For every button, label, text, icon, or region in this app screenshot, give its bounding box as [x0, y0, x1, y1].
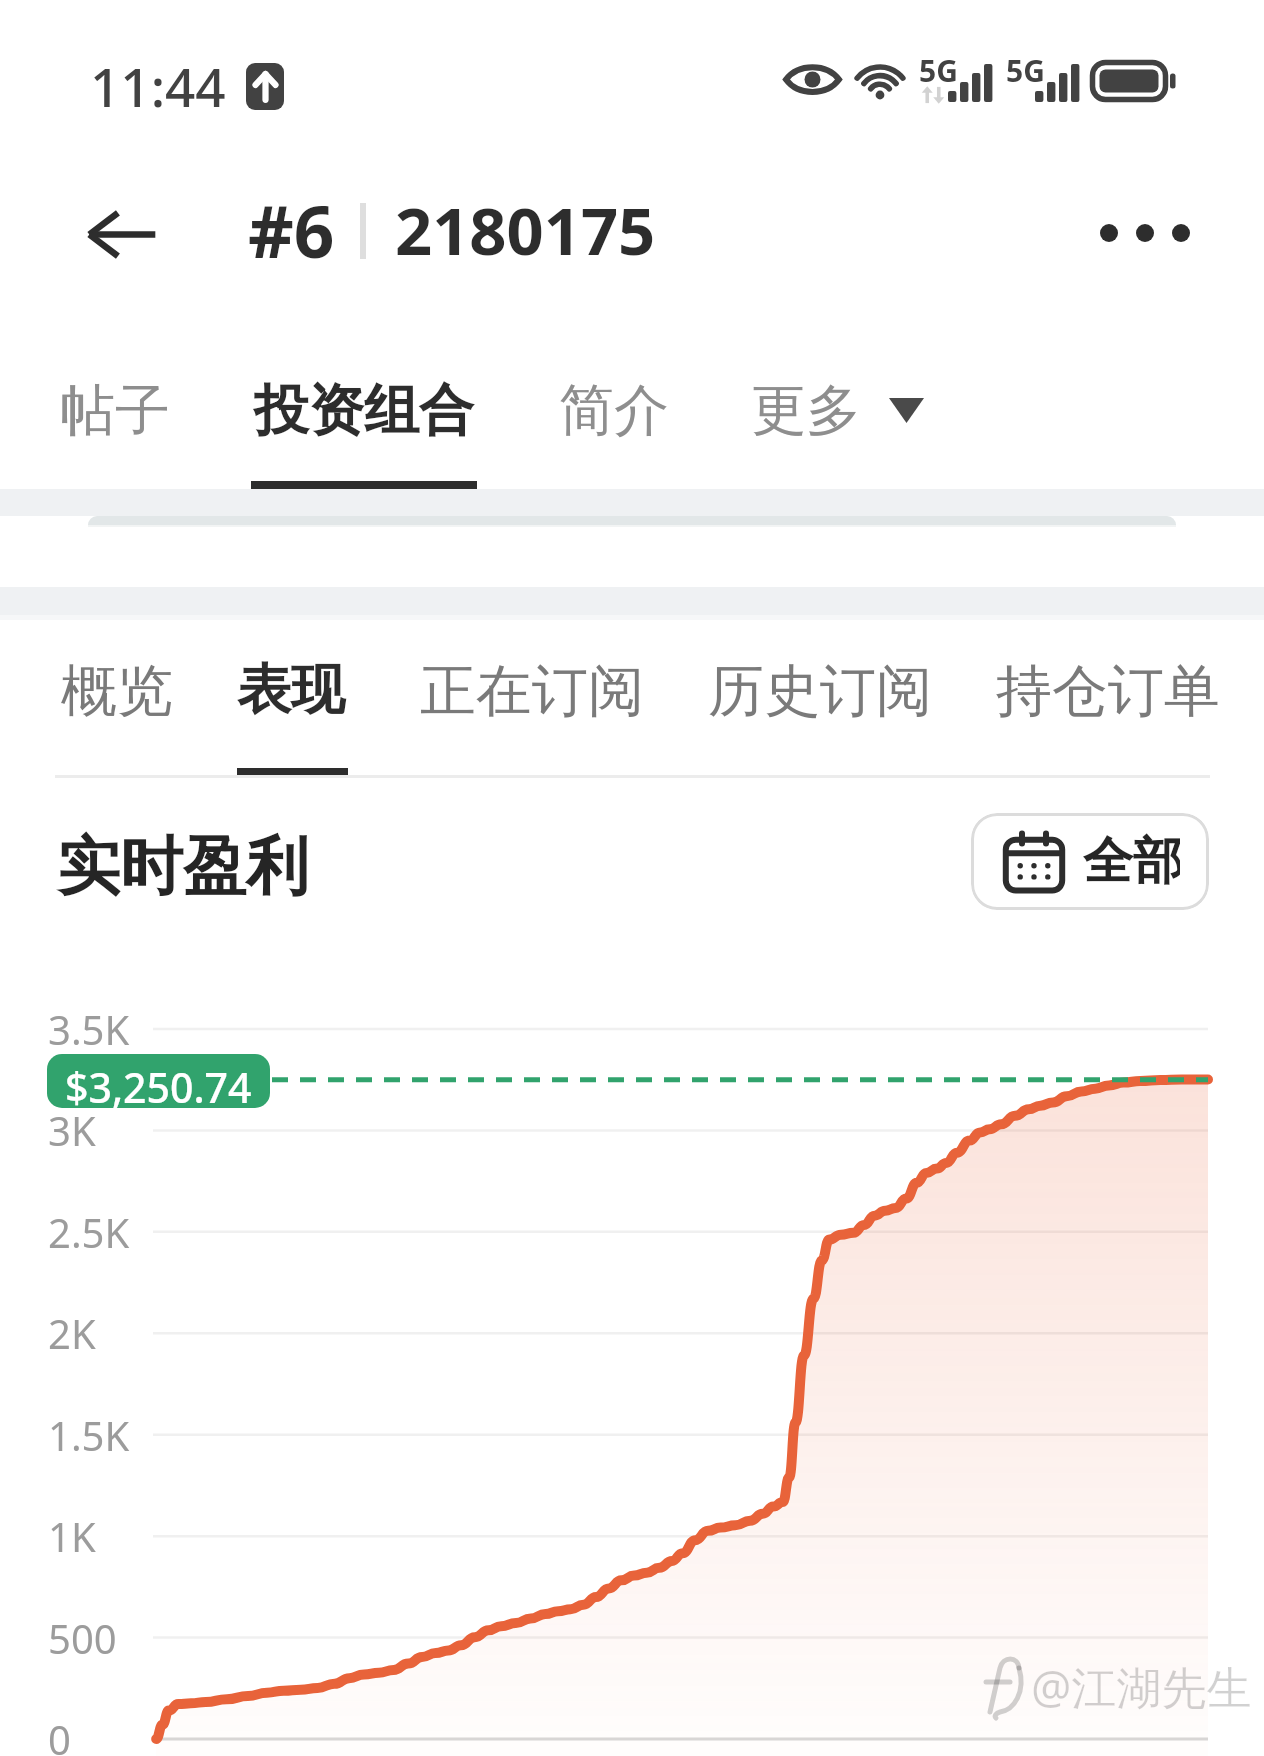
staticText: 2.5K [48, 1205, 130, 1259]
staticText: 表现 [237, 656, 345, 724]
button[interactable]: More options [1070, 187, 1220, 279]
staticText: 2180175 [395, 186, 656, 275]
staticText: 概览 [61, 656, 173, 727]
button[interactable]: Back [60, 188, 184, 280]
button[interactable]: 更多 [733, 360, 942, 461]
staticText: 2K [48, 1306, 96, 1360]
staticText: 持仓订单 [996, 656, 1220, 727]
staticText: 全部 [1083, 830, 1180, 893]
staticText: 投资组合 [254, 376, 474, 445]
button[interactable]: 概览 [43, 640, 191, 743]
staticText: 3K [48, 1103, 96, 1157]
button[interactable]: 全部 [971, 813, 1209, 910]
button[interactable]: 表现 [219, 640, 363, 740]
staticText: 实时盈利 [57, 827, 309, 906]
button[interactable]: 帖子 [42, 360, 188, 461]
staticText: 帖子 [60, 376, 170, 445]
staticText: $3,250.74 [65, 1059, 252, 1108]
staticText: 3.5K [48, 1002, 130, 1056]
staticText: 5G [1006, 50, 1045, 91]
staticText: 简介 [559, 376, 669, 445]
button[interactable]: 正在订阅 [402, 640, 662, 743]
staticText: #6 [248, 182, 335, 279]
staticText: 0 [48, 1712, 71, 1756]
staticText: 5G [919, 50, 958, 91]
staticText: 500 [48, 1611, 117, 1665]
button[interactable]: 简介 [541, 360, 687, 461]
staticText: 正在订阅 [420, 656, 644, 727]
staticText: 11:44 [90, 50, 226, 122]
button[interactable]: 历史订阅 [690, 640, 950, 743]
staticText: 历史订阅 [708, 656, 932, 727]
button[interactable]: 持仓订单 [978, 640, 1238, 743]
staticText: 1.5K [48, 1408, 130, 1462]
staticText: 1K [48, 1509, 96, 1563]
staticText: @江湖先生 [1031, 1656, 1252, 1717]
staticText: 更多 [751, 376, 861, 445]
button[interactable]: 投资组合 [236, 360, 492, 461]
